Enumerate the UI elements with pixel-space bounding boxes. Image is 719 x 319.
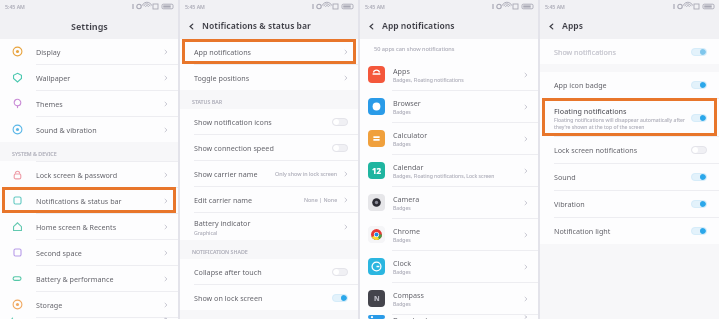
button[interactable]: Back [540, 13, 562, 39]
staticText: Badges [393, 109, 411, 116]
button[interactable]: Show carrier name [180, 160, 358, 186]
staticText: Apps [393, 66, 410, 76]
staticText: NOTIFICATION SHADE [192, 248, 248, 255]
button[interactable]: Google [0, 317, 178, 319]
staticText: Badges, Floating notifications [393, 77, 464, 84]
button[interactable]: Floating notifications [540, 98, 719, 136]
staticText: Floating notifications [554, 106, 627, 116]
staticText: STATUS BAR [192, 98, 223, 105]
button[interactable]: Themes [0, 90, 178, 116]
button[interactable] [691, 114, 707, 122]
button[interactable]: 12 [360, 154, 538, 186]
staticText: Only show in lock screen [275, 170, 338, 177]
staticText: Second space [36, 248, 163, 258]
staticText: Browser [393, 98, 421, 108]
button[interactable]: App icon badge [540, 72, 719, 98]
button[interactable]: Lock screen notifications [540, 136, 719, 163]
button[interactable]: Sound & vibration [0, 116, 178, 142]
button[interactable]: Second space [0, 239, 178, 265]
staticText: App icon badge [554, 80, 691, 90]
staticText: Themes [36, 99, 163, 109]
staticText: 5:45 AM [545, 3, 565, 10]
staticText: Wallpaper [36, 73, 163, 83]
button[interactable] [691, 146, 707, 154]
button[interactable]: Storage [0, 291, 178, 317]
button[interactable]: Battery indicator [180, 212, 358, 240]
staticText: App notifications [194, 47, 343, 57]
button[interactable]: Notifications & status bar [0, 187, 178, 213]
button[interactable]: Downloads [360, 314, 538, 319]
staticText: 12 [372, 165, 382, 176]
button[interactable] [332, 118, 348, 126]
button[interactable] [691, 173, 707, 181]
button[interactable]: Home screen & Recents [0, 213, 178, 239]
button[interactable] [332, 294, 348, 302]
button[interactable]: Display [0, 39, 178, 64]
staticText: Battery indicator [194, 218, 251, 228]
button[interactable]: Edit carrier name [180, 186, 358, 212]
staticText: Apps [562, 20, 583, 32]
staticText: Display [36, 47, 163, 57]
staticText: Vibration [554, 199, 691, 209]
button[interactable]: Chrome [360, 218, 538, 250]
button[interactable] [691, 227, 707, 235]
staticText: Sound [554, 172, 691, 182]
staticText: 5:45 AM [5, 3, 25, 10]
staticText: 5:45 AM [365, 3, 385, 10]
button[interactable]: Toggle positions [180, 64, 358, 90]
button[interactable]: Collapse after touch [180, 259, 358, 284]
staticText: Toggle positions [194, 73, 343, 83]
button[interactable]: App notifications [180, 39, 358, 64]
staticText: Show notification icons [194, 117, 332, 127]
button[interactable]: Vibration [540, 190, 719, 217]
staticText: Downloads [393, 315, 431, 319]
staticText: Badges [393, 269, 411, 276]
button[interactable]: Show notifications [540, 39, 719, 64]
staticText: Show carrier name [194, 169, 258, 179]
staticText: Show connection speed [194, 143, 332, 153]
button[interactable] [691, 81, 707, 89]
staticText: Notifications & status bar [202, 20, 311, 32]
button[interactable]: Clock [360, 250, 538, 282]
staticText: Settings [71, 20, 108, 32]
button[interactable]: Browser [360, 90, 538, 122]
staticText: Lock screen & password [36, 170, 163, 180]
button[interactable]: N [360, 282, 538, 314]
button[interactable]: Back [180, 13, 202, 39]
button[interactable] [332, 144, 348, 152]
button[interactable]: Back [360, 13, 382, 39]
staticText: Compass [393, 290, 424, 300]
staticText: Badges [393, 237, 411, 244]
staticText: Badges [393, 205, 411, 212]
staticText: Battery & performance [36, 274, 163, 284]
staticText: Badges [393, 301, 411, 308]
staticText: Storage [36, 300, 163, 310]
button[interactable]: Notification light [540, 217, 719, 244]
button[interactable] [691, 200, 707, 208]
button[interactable]: Show on lock screen [180, 284, 358, 310]
button[interactable]: Camera [360, 186, 538, 218]
button[interactable]: Show notification icons [180, 109, 358, 134]
staticText: Calculator [393, 130, 428, 140]
staticText: Edit carrier name [194, 195, 253, 205]
button[interactable]: Show connection speed [180, 134, 358, 160]
button[interactable]: Wallpaper [0, 64, 178, 90]
staticText: Floating notifications will disappear au… [554, 117, 685, 130]
button[interactable]: Calculator [360, 122, 538, 154]
staticText: Badges, Floating notifications, Lock scr… [393, 173, 495, 180]
staticText: N [374, 294, 380, 304]
button[interactable] [332, 268, 348, 276]
button[interactable]: Sound [540, 163, 719, 190]
staticText: 5:45 AM [185, 3, 205, 10]
staticText: Chrome [393, 226, 420, 236]
staticText: None | None [304, 196, 338, 203]
button[interactable]: Battery & performance [0, 265, 178, 291]
button[interactable]: Apps [360, 59, 538, 90]
staticText: SYSTEM & DEVICE [12, 150, 57, 157]
staticText: Graphical [194, 229, 218, 236]
button[interactable] [691, 48, 707, 56]
staticText: Notifications & status bar [36, 196, 163, 206]
staticText: Camera [393, 194, 420, 204]
button[interactable]: Lock screen & password [0, 161, 178, 187]
staticText: Collapse after touch [194, 267, 332, 277]
